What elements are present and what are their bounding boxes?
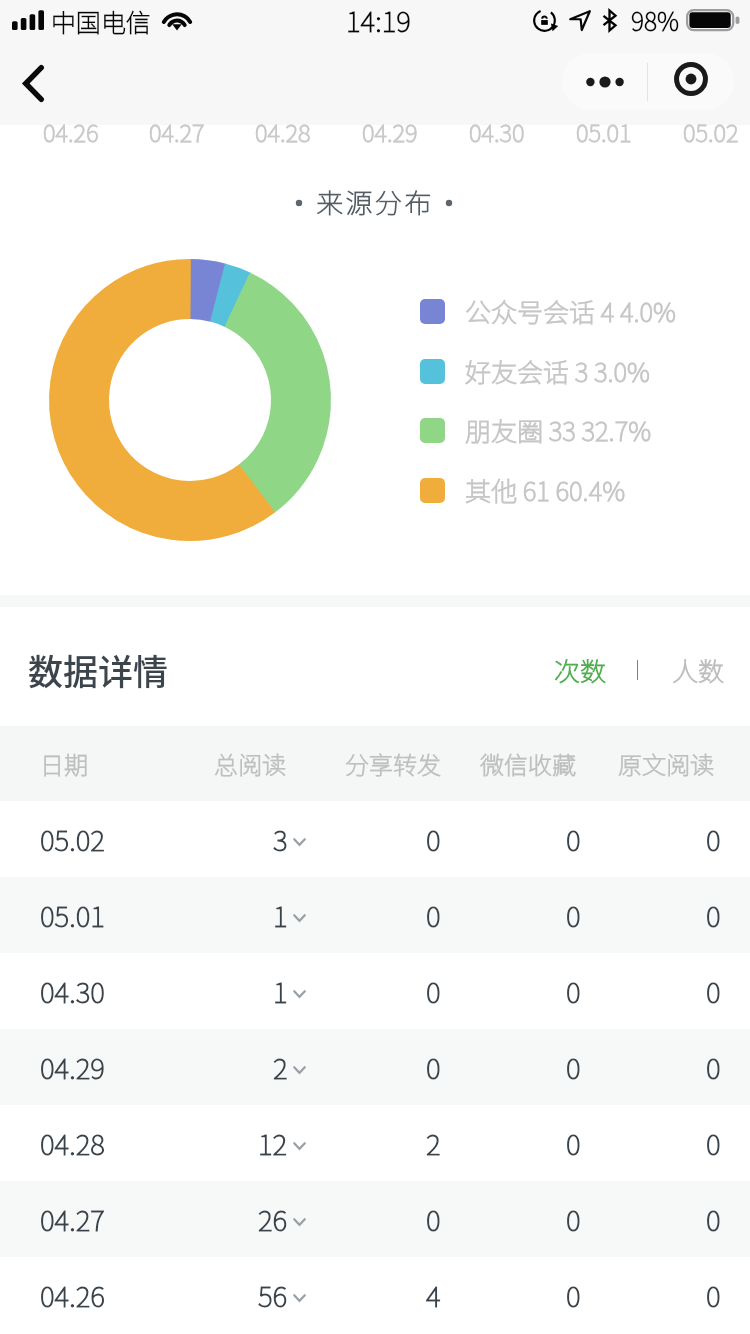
button[interactable]: 好友会话 3 3.0%	[420, 352, 630, 390]
staticText: 其他 61 60.4%	[465, 471, 626, 509]
staticText: 04.30	[40, 971, 105, 1012]
staticText: 0	[706, 895, 721, 936]
staticText: 04.29	[362, 114, 418, 149]
staticText: 04.28	[40, 1123, 105, 1164]
staticText: 0	[706, 971, 721, 1012]
staticText: 微信收藏	[480, 746, 576, 781]
staticText: 0	[706, 819, 721, 860]
button[interactable]: 05.02	[0, 801, 750, 877]
staticText: 0	[566, 1275, 581, 1316]
button[interactable]: 04.27	[0, 1181, 750, 1257]
staticText: 26	[258, 1199, 288, 1240]
staticText: 0	[426, 1047, 441, 1088]
staticText: 中国电信	[51, 3, 152, 39]
staticText: 0	[426, 895, 441, 936]
staticText: 1	[273, 895, 288, 936]
staticText: 05.01	[576, 114, 632, 149]
staticText: 0	[426, 819, 441, 860]
button[interactable]: 04.29	[0, 1029, 750, 1105]
staticText: 0	[706, 1047, 721, 1088]
staticText: 12	[258, 1123, 288, 1164]
button[interactable]: 04.28	[0, 1105, 750, 1181]
staticText: 0	[566, 971, 581, 1012]
staticText: 14:19	[346, 0, 411, 41]
button[interactable]: 次数	[546, 645, 615, 695]
button[interactable]: Back	[4, 54, 62, 112]
staticText: 04.26	[40, 1275, 105, 1316]
staticText: 3	[273, 819, 288, 860]
staticText: 0	[706, 1199, 721, 1240]
staticText: 0	[706, 1123, 721, 1164]
staticText: 0	[566, 1199, 581, 1240]
staticText: 数据详情	[28, 644, 169, 695]
staticText: 04.29	[40, 1047, 105, 1088]
staticText: 公众号会话 4 4.0%	[465, 292, 676, 330]
staticText: 来源分布	[0, 182, 750, 221]
button[interactable]: 朋友圈 33 32.7%	[420, 411, 632, 449]
button[interactable]: 其他 61 60.4%	[420, 471, 606, 509]
staticText: 98%	[631, 2, 680, 38]
staticText: 0	[566, 1123, 581, 1164]
staticText: 朋友圈 33 32.7%	[465, 411, 652, 449]
staticText: 56	[258, 1275, 288, 1316]
button[interactable]: 人数	[664, 645, 733, 695]
staticText: 0	[566, 819, 581, 860]
staticText: 总阅读	[214, 746, 286, 781]
staticText: 2	[426, 1123, 441, 1164]
staticText: 04.26	[43, 114, 99, 149]
button[interactable]: More options and close mini program	[562, 53, 734, 110]
staticText: 0	[426, 971, 441, 1012]
staticText: 04.27	[149, 114, 205, 149]
staticText: 好友会话 3 3.0%	[465, 352, 650, 390]
staticText: 次数	[554, 651, 607, 689]
staticText: 4	[426, 1275, 441, 1316]
staticText: 原文阅读	[618, 746, 714, 781]
staticText: 1	[273, 971, 288, 1012]
button[interactable]: 04.30	[0, 953, 750, 1029]
staticText: 日期	[40, 746, 88, 781]
staticText: 05.02	[683, 114, 739, 149]
staticText: 05.01	[40, 895, 105, 936]
staticText: 分享转发	[345, 746, 441, 781]
staticText: 0	[566, 1047, 581, 1088]
button[interactable]: 公众号会话 4 4.0%	[420, 292, 656, 330]
staticText: 人数	[672, 651, 725, 689]
staticText: 04.27	[40, 1199, 105, 1240]
button[interactable]: 05.01	[0, 877, 750, 953]
staticText: 05.02	[40, 819, 105, 860]
staticText: 0	[566, 895, 581, 936]
staticText: 04.30	[469, 114, 525, 149]
button[interactable]: 04.26	[0, 1257, 750, 1333]
staticText: 04.28	[255, 114, 311, 149]
staticText: 2	[273, 1047, 288, 1088]
staticText: 0	[426, 1199, 441, 1240]
staticText: 0	[706, 1275, 721, 1316]
